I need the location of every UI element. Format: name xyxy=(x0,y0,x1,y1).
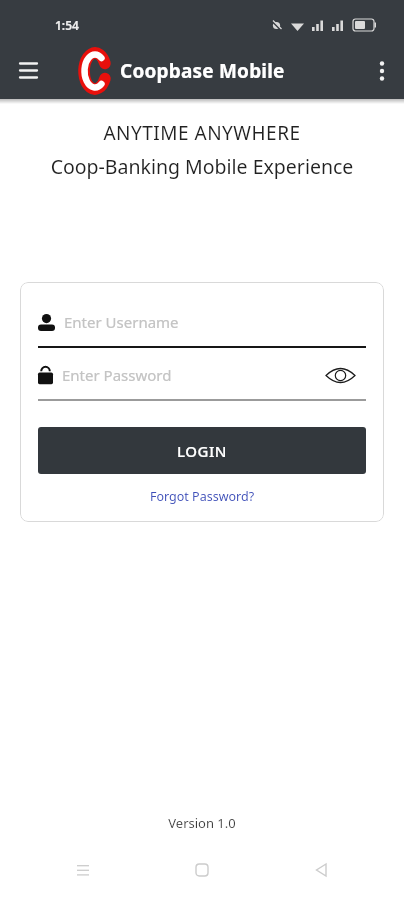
button[interactable] xyxy=(68,855,98,885)
staticText: Enter Username xyxy=(64,312,179,332)
staticText: Coop-Banking Mobile Experience xyxy=(0,153,404,180)
button[interactable]: Forgot Password? xyxy=(144,482,261,511)
button[interactable] xyxy=(320,360,360,390)
staticText: Forgot Password? xyxy=(150,488,255,505)
staticText: LOGIN xyxy=(177,441,227,461)
staticText: 1:54 xyxy=(55,17,79,33)
button[interactable]: Enter Username xyxy=(38,306,366,338)
staticText: Enter Password xyxy=(62,365,172,385)
button[interactable]: LOGIN xyxy=(38,427,366,474)
button[interactable] xyxy=(360,42,404,99)
staticText: Coopbase Mobile xyxy=(120,58,285,84)
staticText: Version 1.0 xyxy=(0,814,404,832)
button[interactable]: Enter Password xyxy=(38,360,366,390)
staticText: ANYTIME ANYWHERE xyxy=(0,120,404,146)
button[interactable] xyxy=(187,855,217,885)
button[interactable] xyxy=(0,42,56,99)
button[interactable] xyxy=(306,855,336,885)
